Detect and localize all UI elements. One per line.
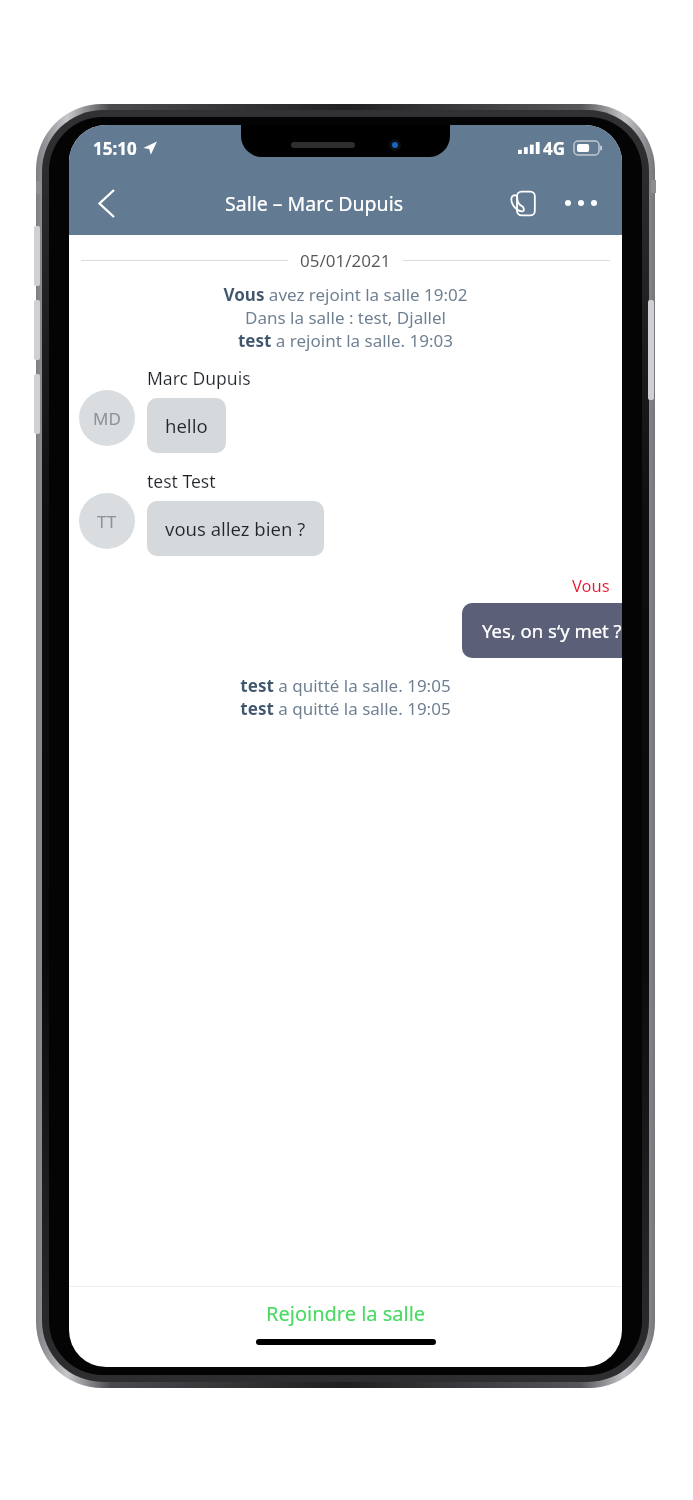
button[interactable]: hello: [147, 398, 226, 453]
staticText: Dans la salle : test, Djallel: [69, 306, 622, 329]
staticText: test a rejoint la salle. 19:03: [69, 329, 622, 352]
staticText: Yes, on s‘y met ?: [482, 618, 622, 643]
staticText: Salle – Marc Dupuis: [225, 190, 404, 217]
button[interactable]: vous allez bien ?: [147, 501, 324, 556]
button[interactable]: Back: [83, 180, 129, 226]
staticText: 05/01/2021: [300, 249, 391, 272]
staticText: TT: [97, 510, 117, 533]
staticText: Rejoindre la salle: [266, 1300, 426, 1327]
staticText: MD: [93, 407, 121, 430]
staticText: test Test: [147, 469, 216, 493]
staticText: vous allez bien ?: [165, 516, 306, 541]
button[interactable]: Call: [500, 180, 546, 226]
staticText: 15:10: [93, 137, 137, 160]
button[interactable]: Rejoindre la salle: [69, 1287, 622, 1339]
staticText: Vous: [572, 574, 610, 596]
button[interactable]: Yes, on s‘y met ?: [462, 603, 622, 658]
staticText: test a quitté la salle. 19:05: [69, 697, 622, 720]
staticText: test a quitté la salle. 19:05: [69, 674, 622, 697]
button[interactable]: More options: [558, 180, 604, 226]
staticText: Marc Dupuis: [147, 366, 251, 390]
staticText: Vous avez rejoint la salle 19:02: [69, 283, 622, 306]
staticText: 4G: [543, 137, 566, 160]
staticText: hello: [165, 413, 208, 438]
